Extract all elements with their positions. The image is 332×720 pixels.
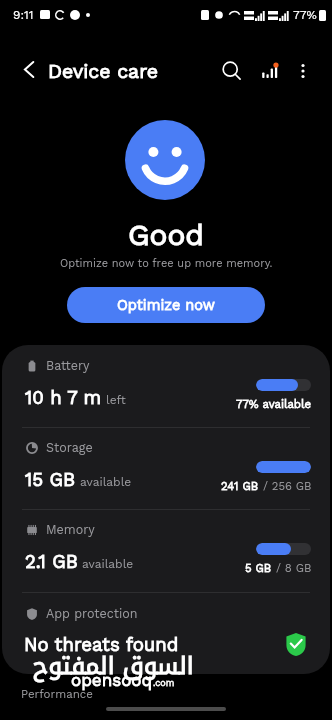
- staticText: .com: [153, 678, 175, 689]
- staticText: 77%: [293, 8, 317, 22]
- button[interactable]: Memory: [2, 509, 330, 591]
- button[interactable]: Search: [215, 54, 249, 88]
- button[interactable]: Battery: [2, 345, 330, 427]
- staticText: السوق المفتوح: [33, 643, 194, 689]
- staticText: Memory: [46, 522, 95, 537]
- button[interactable]: Storage: [2, 427, 330, 509]
- button[interactable]: App protection: [2, 592, 330, 674]
- staticText: 15 GB: [25, 469, 76, 491]
- staticText: opensooq: [71, 670, 153, 690]
- button[interactable]: Statistics: [252, 54, 286, 88]
- staticText: available: [82, 557, 134, 571]
- staticText: Optimize now: [117, 297, 215, 314]
- staticText: Optimize now to free up more memory.: [60, 257, 273, 270]
- staticText: 9:11: [13, 8, 34, 22]
- button[interactable]: Back: [15, 55, 43, 83]
- button[interactable]: More options: [286, 54, 320, 88]
- staticText: 5 GB: [245, 561, 272, 574]
- staticText: Battery: [46, 358, 90, 373]
- staticText: available: [80, 475, 132, 489]
- staticText: / 256 GB: [259, 479, 312, 492]
- staticText: 77% available: [236, 397, 312, 410]
- button[interactable]: Optimize now: [67, 287, 265, 323]
- staticText: Performance: [21, 687, 93, 700]
- staticText: Storage: [46, 440, 93, 455]
- staticText: / 8 GB: [272, 561, 312, 574]
- staticText: 10 h 7 m: [25, 387, 102, 409]
- staticText: 241 GB: [221, 479, 259, 492]
- staticText: left: [106, 393, 126, 407]
- staticText: No threats found: [24, 634, 179, 656]
- staticText: Device care: [48, 60, 159, 83]
- staticText: Good: [128, 217, 205, 252]
- staticText: App protection: [46, 606, 138, 621]
- staticText: 2.1 GB: [25, 551, 78, 573]
